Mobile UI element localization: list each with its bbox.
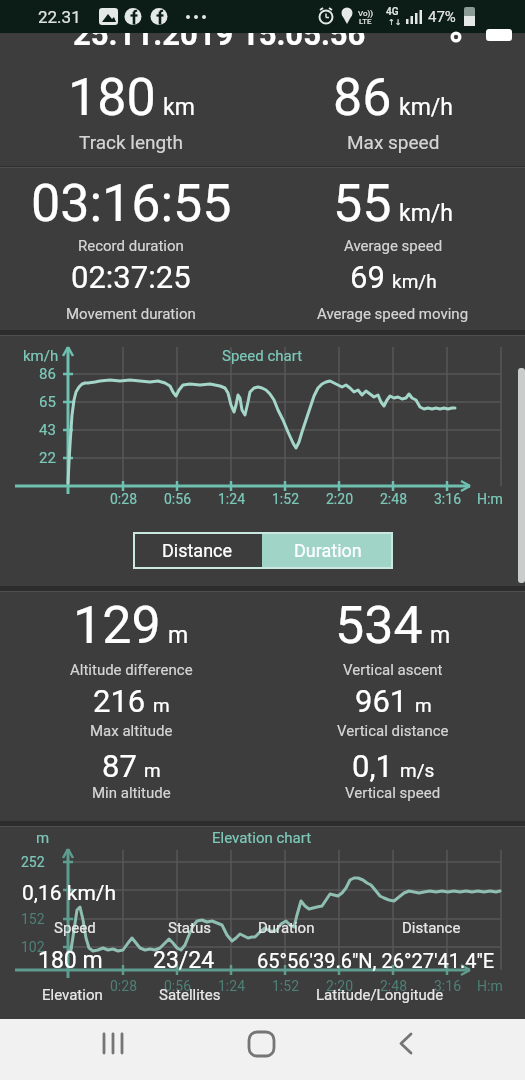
staticText: Altitude difference (70, 661, 193, 679)
staticText: 4G (386, 6, 399, 18)
staticText: Max speed (347, 131, 440, 153)
staticText: 87 (102, 748, 137, 784)
staticText: m/s (400, 759, 435, 781)
staticText: 55 (333, 173, 392, 234)
staticText: 2:20 (326, 491, 353, 507)
staticText: 1:24 (218, 491, 245, 507)
staticText: Average speed moving (317, 305, 469, 323)
staticText: 216 (93, 683, 146, 719)
staticText: m (430, 622, 451, 649)
staticText: Max altitude (90, 722, 173, 740)
staticText: Speed (54, 919, 96, 937)
staticText: m (153, 694, 170, 716)
staticText: 102 (21, 939, 45, 955)
staticText: 22.31 (38, 7, 81, 27)
staticText: m (415, 694, 432, 716)
staticText: Elevation chart (212, 829, 312, 847)
staticText: 69 (350, 259, 385, 295)
staticText: 43 (39, 421, 56, 439)
staticText: H:m (477, 978, 503, 994)
staticText: 86 (39, 365, 56, 383)
staticText: km/h (392, 270, 437, 292)
button[interactable]: Duration (262, 532, 393, 569)
button[interactable] (378, 1025, 434, 1073)
staticText: 180 (68, 67, 156, 128)
button[interactable] (234, 1025, 290, 1073)
staticText: Vertical speed (345, 784, 441, 802)
button[interactable] (85, 1025, 141, 1073)
staticText: 1:52 (272, 978, 299, 994)
staticText: Duration (258, 919, 315, 937)
staticText: 65°56'39.6"N, 26°27'41.4"E (257, 949, 495, 972)
button[interactable]: Distance (133, 532, 262, 569)
staticText: 961 (355, 683, 408, 719)
staticText: km/h (399, 94, 453, 121)
staticText: Movement duration (66, 305, 196, 323)
staticText: Average speed (344, 237, 443, 255)
staticText: km/h (23, 347, 59, 365)
staticText: 22 (39, 449, 56, 467)
staticText: km/h (399, 200, 453, 227)
staticText: 65 (39, 393, 56, 411)
staticText: m (36, 829, 50, 847)
staticText: km (163, 94, 195, 121)
staticText: 0,16 km/h (22, 881, 117, 906)
staticText: 3:16 (434, 978, 461, 994)
staticText: 180 m (38, 947, 103, 974)
staticText: Track length (79, 131, 183, 153)
staticText: 1:24 (218, 978, 245, 994)
staticText: 02:37:25 (71, 259, 191, 295)
staticText: Min altitude (92, 784, 171, 802)
staticText: 2:48 (380, 978, 407, 994)
staticText: 3:16 (434, 491, 461, 507)
staticText: 25.11.2019 15:05:56 (73, 33, 366, 47)
staticText: 86 (333, 67, 392, 128)
staticText: Vertical distance (337, 722, 449, 740)
staticText: 0,1 (352, 748, 393, 784)
staticText: Vo)) (358, 9, 374, 18)
staticText: 1:52 (272, 491, 299, 507)
staticText: 152 (21, 911, 45, 927)
staticText: Status (168, 919, 211, 937)
staticText: H:m (477, 491, 503, 507)
staticText: 2:20 (326, 978, 353, 994)
staticText: 23/24 (153, 947, 215, 974)
staticText: Latitude/Longitude (316, 986, 444, 1004)
staticText: 534 (335, 595, 423, 656)
staticText: 2:48 (380, 491, 407, 507)
staticText: 0:56 (164, 978, 191, 994)
staticText: Satellites (159, 986, 221, 1004)
staticText: ↑↓ (388, 18, 402, 27)
staticText: Vertical ascent (343, 661, 443, 679)
staticText: Elevation (42, 986, 103, 1004)
staticText: Distance (162, 540, 233, 561)
staticText: Distance (402, 919, 461, 937)
staticText: LTE (359, 17, 372, 26)
staticText: 47% (428, 8, 456, 26)
staticText: m (144, 759, 161, 781)
staticText: Record duration (78, 237, 184, 255)
staticText: 129 (73, 595, 161, 656)
staticText: m (168, 622, 189, 649)
staticText: Duration (294, 540, 362, 561)
staticText: Speed chart (222, 347, 303, 365)
staticText: 0:56 (164, 491, 191, 507)
staticText: 252 (21, 854, 45, 870)
staticText: 0:28 (110, 978, 137, 994)
staticText: 03:16:55 (31, 173, 232, 234)
staticText: 0:28 (110, 491, 137, 507)
